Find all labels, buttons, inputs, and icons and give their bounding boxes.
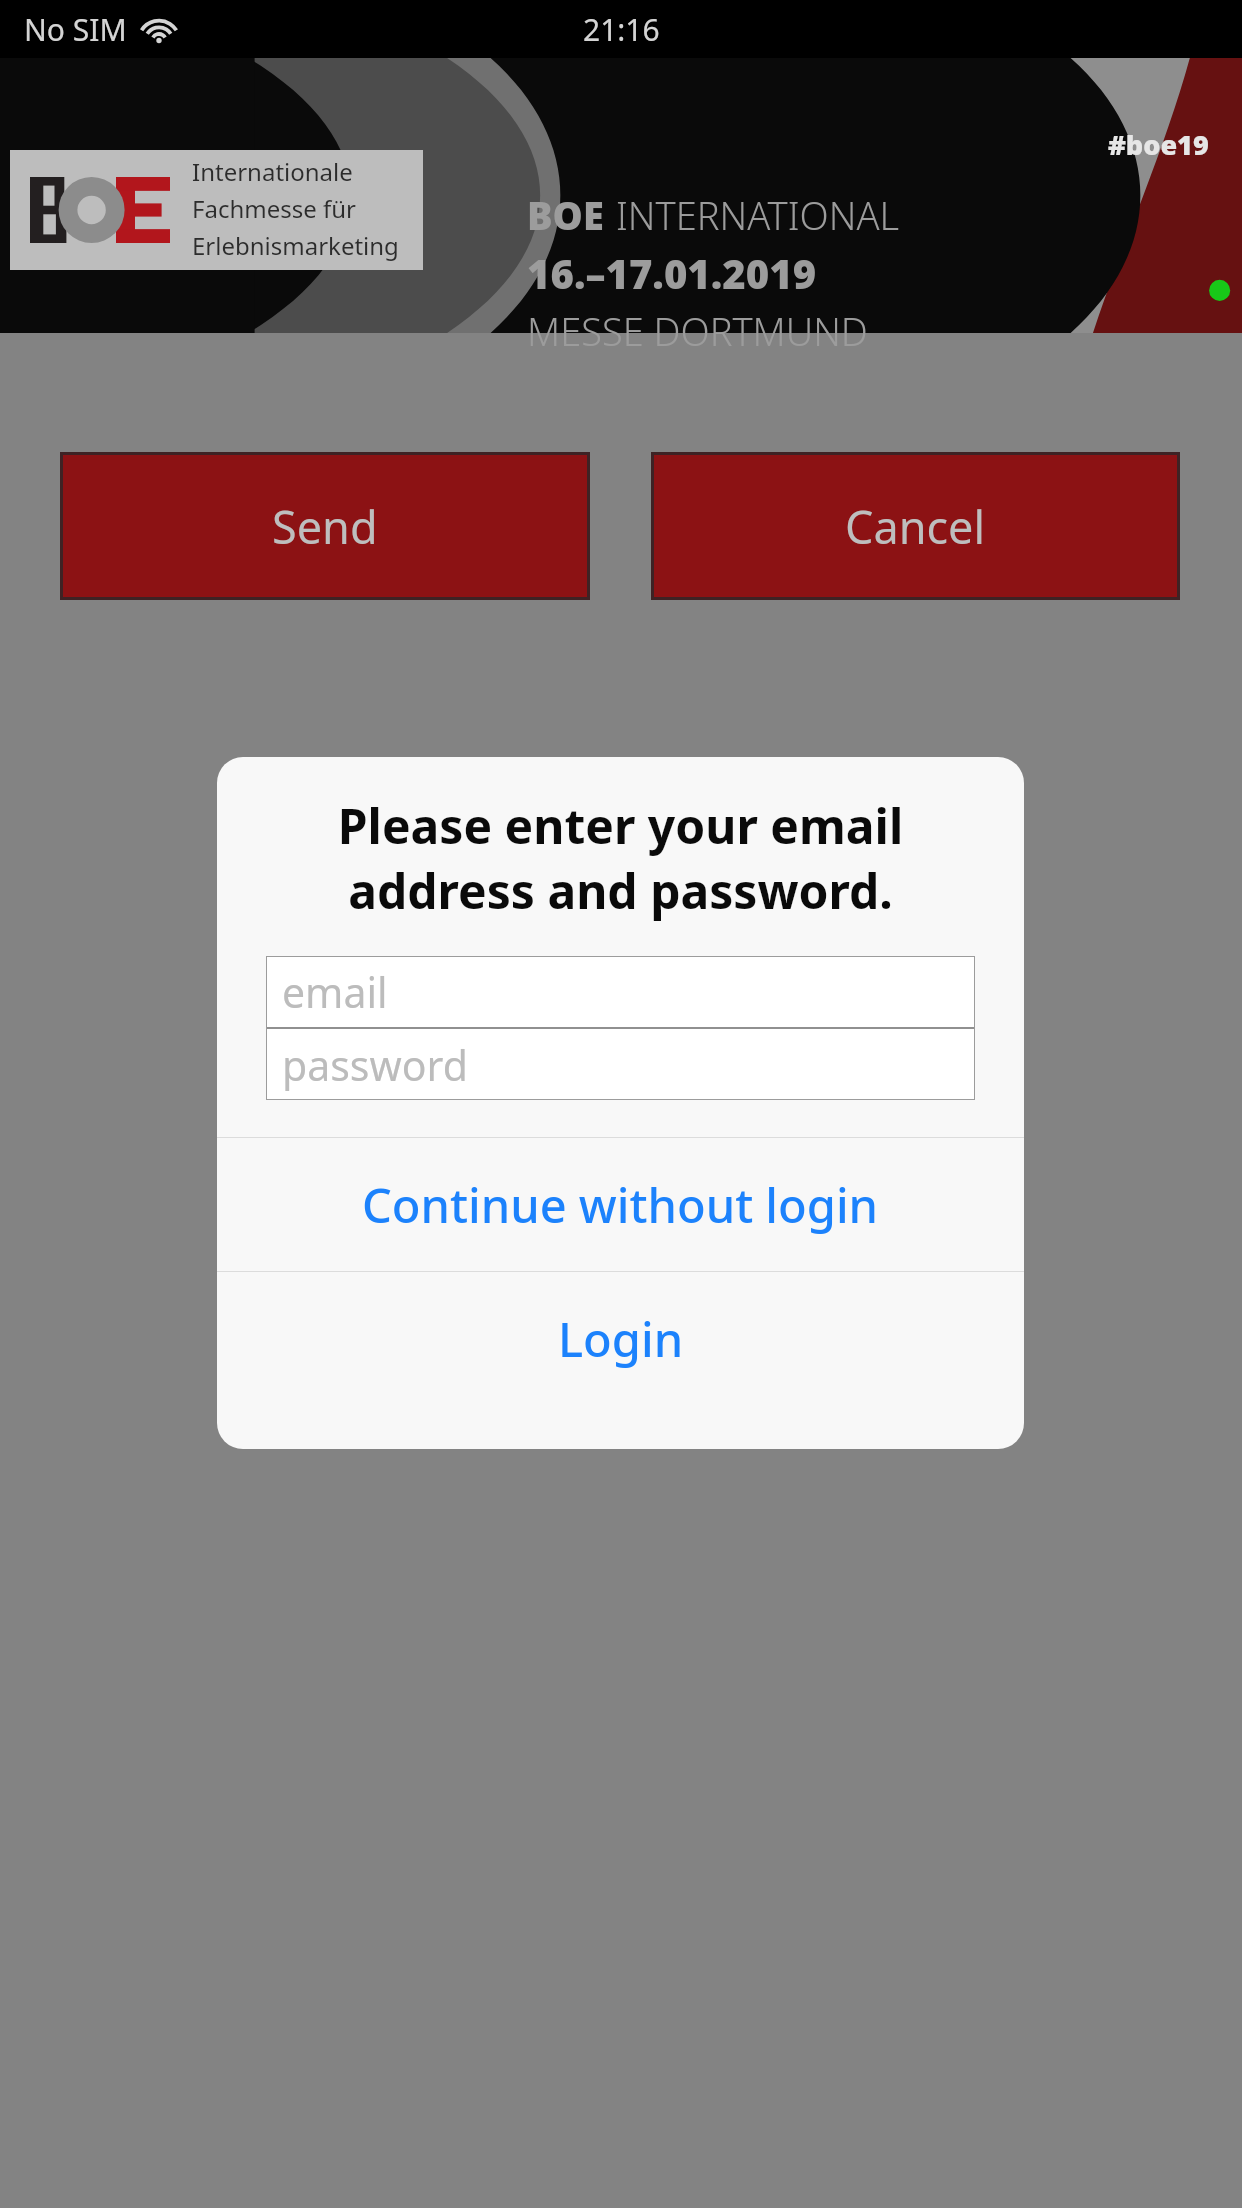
button[interactable]: BOE International 2019 banner: [0, 58, 1242, 333]
staticText: INTERNATIONAL: [616, 189, 900, 241]
staticText: 16.–17.01.2019: [527, 246, 817, 300]
staticText: Internationale: [192, 155, 353, 188]
staticText: No SIM: [24, 9, 127, 50]
button[interactable]: password: [266, 1029, 975, 1100]
staticText: 21:16: [583, 9, 660, 50]
staticText: email: [282, 964, 388, 1020]
staticText: MESSE DORTMUND: [527, 305, 868, 357]
button[interactable]: Continue without login: [217, 1138, 1024, 1271]
staticText: Cancel: [845, 496, 986, 557]
button[interactable]: Cancel: [654, 455, 1177, 597]
staticText: password: [282, 1037, 468, 1093]
button[interactable]: Send: [63, 455, 587, 597]
button[interactable]: email: [266, 956, 975, 1027]
staticText: Erlebnismarketing: [192, 229, 399, 262]
button[interactable]: Login: [217, 1272, 1024, 1405]
staticText: Continue without login: [362, 1173, 879, 1237]
staticText: Login: [558, 1307, 684, 1371]
staticText: BOE: [527, 189, 604, 241]
staticText: Send: [272, 496, 378, 557]
staticText: Please enter your email address and pass…: [247, 793, 994, 923]
staticText: #boe19: [1108, 126, 1209, 163]
staticText: Fachmesse für: [192, 192, 357, 225]
